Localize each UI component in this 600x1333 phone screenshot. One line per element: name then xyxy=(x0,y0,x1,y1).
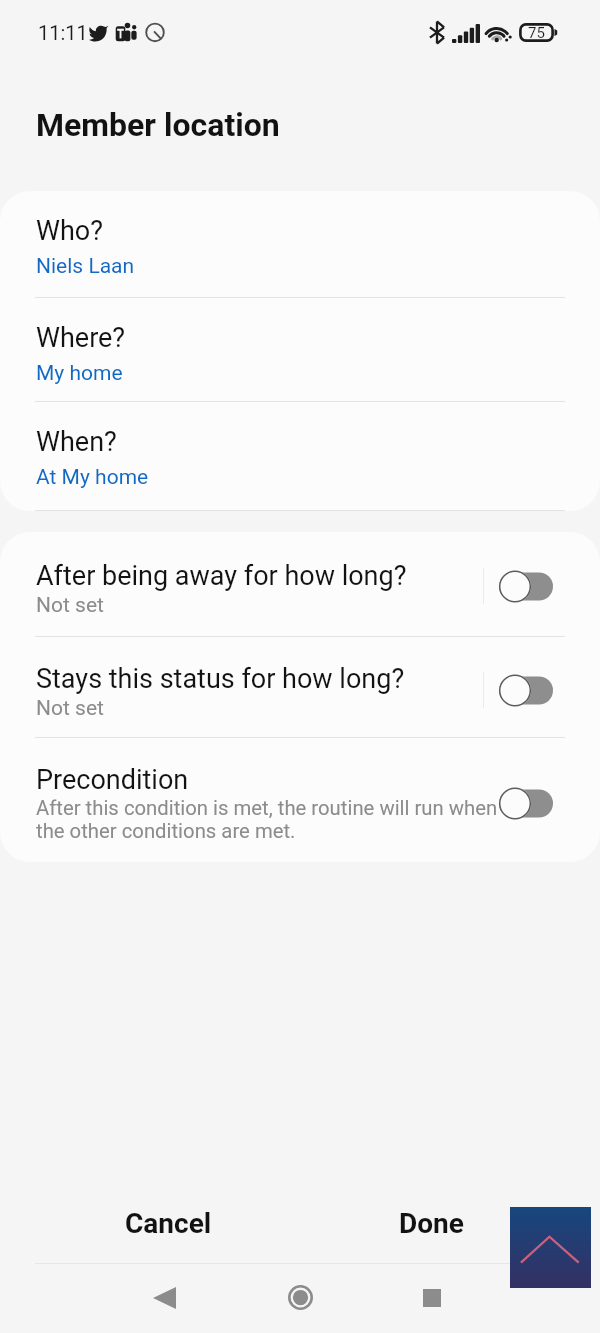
staticText: Who? xyxy=(36,215,103,247)
button[interactable]: Toggle After being away for how long? xyxy=(490,558,562,614)
staticText: Not set xyxy=(36,593,104,618)
staticText: Stays this status for how long? xyxy=(36,663,405,695)
staticText: Member location xyxy=(36,106,280,144)
staticText: My home xyxy=(36,361,123,386)
staticText: Done xyxy=(399,1207,464,1240)
staticText: Niels Laan xyxy=(36,254,135,279)
staticText: When? xyxy=(36,426,117,458)
button[interactable]: Toggle Precondition xyxy=(490,775,562,831)
button[interactable]: Toggle Stays this status for how long? xyxy=(490,662,562,718)
staticText: Cancel xyxy=(125,1207,212,1240)
button[interactable]: When? xyxy=(0,402,600,511)
button[interactable]: Who? xyxy=(0,191,600,298)
button[interactable]: Where? xyxy=(0,298,600,402)
staticText: Where? xyxy=(36,322,126,354)
button[interactable]: Cancel xyxy=(58,1183,278,1263)
button[interactable]: Home xyxy=(250,1266,350,1328)
staticText: 11:11 xyxy=(38,21,88,44)
button[interactable]: Recents xyxy=(382,1267,482,1329)
staticText: After this condition is met, the routine… xyxy=(36,796,514,843)
staticText: After being away for how long? xyxy=(36,560,407,592)
button[interactable]: Floating window preview xyxy=(510,1207,591,1288)
button[interactable]: Done xyxy=(321,1183,541,1263)
button[interactable]: Back xyxy=(114,1267,214,1329)
staticText: Not set xyxy=(36,696,104,721)
staticText: Precondition xyxy=(36,764,189,796)
staticText: 75 xyxy=(528,24,545,42)
staticText: At My home xyxy=(36,465,149,490)
